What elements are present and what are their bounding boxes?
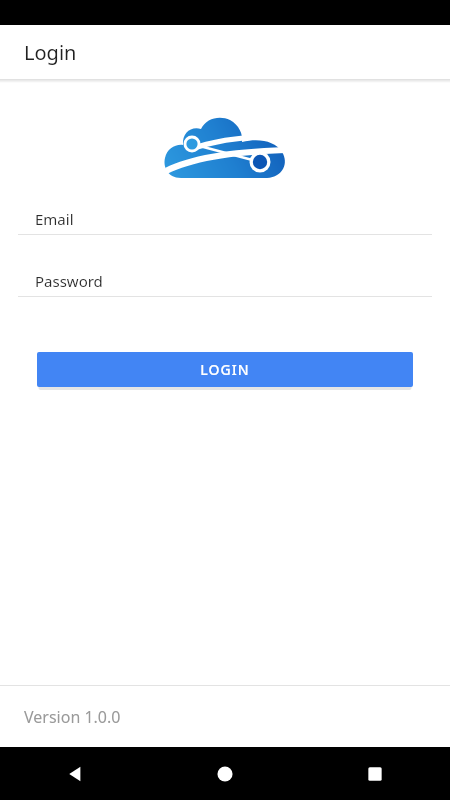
button[interactable]: Back: [0, 747, 150, 800]
button[interactable]: LOGIN: [37, 352, 413, 387]
staticText: LOGIN: [200, 360, 250, 379]
button[interactable]: Recent apps: [300, 747, 450, 800]
button[interactable]: Home: [150, 747, 300, 800]
button[interactable]: Email: [0, 204, 450, 265]
staticText: Email: [35, 209, 74, 229]
staticText: Login: [24, 39, 77, 66]
staticText: Version 1.0.0: [24, 706, 121, 728]
button[interactable]: Password: [0, 266, 450, 327]
staticText: Password: [35, 271, 103, 291]
